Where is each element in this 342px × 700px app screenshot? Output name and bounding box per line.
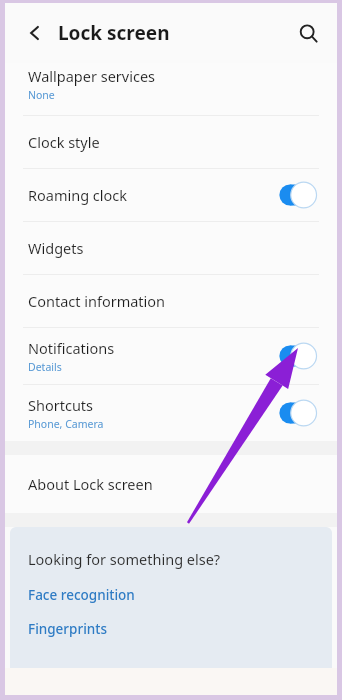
staticText: Details: [28, 360, 62, 374]
staticText: Clock style: [28, 132, 100, 152]
staticText: Lock screen: [58, 20, 170, 46]
staticText: Fingerprints: [28, 620, 107, 638]
button[interactable]: Notifications: [5, 328, 337, 384]
staticText: Notifications: [28, 338, 115, 358]
staticText: Phone, Camera: [28, 417, 104, 431]
staticText: Roaming clock: [28, 185, 128, 205]
button[interactable]: Wallpaper services: [5, 63, 337, 115]
button[interactable]: Search: [291, 16, 325, 50]
staticText: Wallpaper services: [28, 66, 156, 86]
button[interactable]: Clock style: [5, 116, 337, 168]
staticText: Looking for something else?: [28, 549, 221, 569]
button[interactable]: Toggle: [275, 342, 319, 370]
staticText: None: [28, 88, 55, 102]
staticText: Widgets: [28, 238, 84, 258]
button[interactable]: Roaming clock: [5, 169, 337, 221]
button[interactable]: Contact information: [5, 275, 337, 327]
button[interactable]: Widgets: [5, 222, 337, 274]
staticText: About Lock screen: [28, 474, 153, 494]
staticText: Contact information: [28, 291, 166, 311]
button[interactable]: Back: [19, 17, 51, 49]
button[interactable]: Toggle: [275, 181, 319, 209]
staticText: Face recognition: [28, 586, 135, 604]
button[interactable]: Toggle: [275, 399, 319, 427]
button[interactable]: About Lock screen: [5, 455, 337, 513]
button[interactable]: Shortcuts: [5, 385, 337, 441]
button[interactable]: Fingerprints: [28, 620, 332, 638]
staticText: Shortcuts: [28, 395, 94, 415]
button[interactable]: Face recognition: [28, 586, 332, 604]
